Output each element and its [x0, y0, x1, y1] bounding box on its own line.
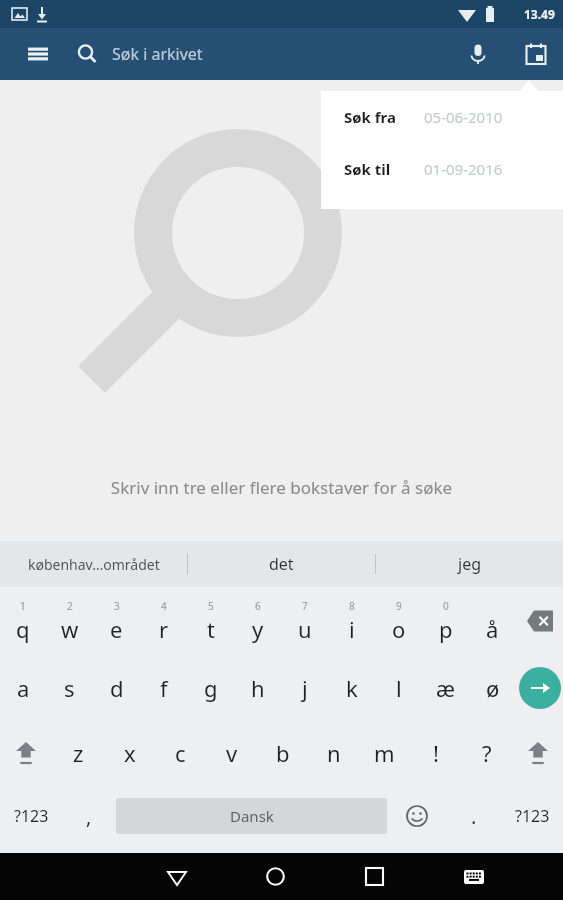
button[interactable]: k — [328, 655, 375, 721]
button[interactable]: københav…området — [0, 541, 187, 587]
staticText: n — [327, 738, 341, 768]
staticText: 13.49 — [524, 6, 555, 22]
staticText: k — [346, 673, 358, 703]
button[interactable]: n — [308, 721, 359, 785]
staticText: q — [16, 614, 30, 644]
staticText: 4 — [161, 599, 167, 613]
staticText: 9 — [396, 599, 402, 613]
button[interactable]: Søk fra — [321, 91, 563, 143]
button[interactable]: 9 — [375, 587, 422, 655]
button[interactable]: h — [234, 655, 281, 721]
staticText: 3 — [114, 599, 120, 613]
button[interactable]: 8 — [328, 587, 375, 655]
button[interactable]: æ — [422, 655, 469, 721]
staticText: s — [64, 673, 75, 703]
staticText: 01-09-2016 — [424, 159, 503, 179]
button[interactable]: 1 — [0, 587, 46, 655]
button[interactable]: j — [281, 655, 328, 721]
button[interactable]: Menu — [20, 36, 56, 72]
staticText: københav…området — [28, 555, 160, 574]
button[interactable]: Emoji — [387, 785, 447, 847]
button[interactable]: å — [469, 587, 516, 655]
button[interactable]: 2 — [46, 587, 93, 655]
button[interactable]: Søk i arkivet — [112, 43, 457, 65]
button[interactable]: Back — [127, 853, 226, 900]
staticText: jeg — [458, 553, 481, 575]
button[interactable]: 5 — [187, 587, 234, 655]
button[interactable]: , — [62, 785, 116, 847]
staticText: 1 — [20, 599, 26, 613]
button[interactable]: d — [93, 655, 140, 721]
button[interactable]: s — [46, 655, 93, 721]
button[interactable]: v — [206, 721, 257, 785]
staticText: o — [392, 614, 406, 644]
staticText: 8 — [349, 599, 355, 613]
button[interactable]: Shift — [0, 721, 52, 785]
button[interactable]: 6 — [234, 587, 281, 655]
staticText: Dansk — [230, 806, 274, 826]
staticText: b — [276, 738, 290, 768]
button[interactable]: b — [257, 721, 308, 785]
button[interactable]: Søk til — [321, 143, 563, 195]
button[interactable]: jeg — [376, 541, 563, 587]
staticText: j — [302, 673, 308, 703]
button[interactable]: 0 — [422, 587, 469, 655]
staticText: v — [226, 738, 238, 768]
button[interactable]: Search — [70, 37, 104, 71]
staticText: ? — [482, 738, 492, 768]
staticText: r — [159, 614, 169, 644]
button[interactable]: Recents — [325, 853, 424, 900]
staticText: p — [439, 614, 453, 644]
button[interactable]: ? — [461, 721, 512, 785]
staticText: c — [175, 738, 186, 768]
staticText: det — [269, 553, 294, 575]
button[interactable]: 3 — [93, 587, 140, 655]
staticText: h — [251, 673, 265, 703]
staticText: f — [160, 673, 168, 703]
staticText: Søk fra — [344, 107, 424, 127]
staticText: m — [374, 738, 395, 768]
button[interactable]: det — [188, 541, 375, 587]
staticText: g — [204, 673, 218, 703]
button[interactable]: Voice search — [457, 33, 499, 75]
button[interactable]: 4 — [140, 587, 187, 655]
button[interactable]: Dansk — [116, 798, 387, 834]
button[interactable]: Search — [516, 655, 563, 721]
button[interactable]: a — [0, 655, 46, 721]
button[interactable]: 7 — [281, 587, 328, 655]
button[interactable]: Shift — [512, 721, 563, 785]
staticText: w — [61, 614, 79, 644]
button[interactable]: Home — [226, 853, 325, 900]
staticText: å — [486, 614, 499, 644]
staticText: 05-06-2010 — [424, 107, 503, 127]
staticText: Skriv inn tre eller flere bokstaver for … — [0, 476, 563, 499]
button[interactable]: Keyboard — [424, 853, 523, 900]
button[interactable]: ø — [469, 655, 516, 721]
button[interactable]: f — [140, 655, 187, 721]
staticText: l — [396, 673, 402, 703]
staticText: ø — [486, 673, 500, 703]
staticText: 7 — [302, 599, 308, 613]
staticText: z — [73, 738, 84, 768]
staticText: i — [349, 614, 355, 644]
button[interactable]: . — [447, 785, 501, 847]
button[interactable]: c — [155, 721, 206, 785]
button[interactable]: ?123 — [501, 785, 563, 847]
staticText: e — [110, 614, 123, 644]
staticText: ?123 — [515, 805, 550, 827]
button[interactable]: ?123 — [0, 785, 62, 847]
button[interactable]: Date filter — [515, 33, 557, 75]
staticText: 0 — [443, 599, 449, 613]
staticText: 6 — [255, 599, 261, 613]
button[interactable]: ! — [410, 721, 461, 785]
button[interactable]: l — [375, 655, 422, 721]
staticText: 5 — [208, 599, 214, 613]
staticText: t — [207, 614, 215, 644]
staticText: a — [17, 673, 30, 703]
button[interactable]: m — [359, 721, 410, 785]
button[interactable]: x — [104, 721, 155, 785]
button[interactable]: g — [187, 655, 234, 721]
button[interactable]: z — [52, 721, 104, 785]
staticText: d — [110, 673, 124, 703]
button[interactable]: Backspace — [516, 587, 563, 655]
